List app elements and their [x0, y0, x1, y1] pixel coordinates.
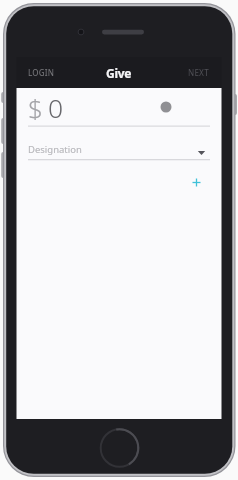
staticText: LOGIN	[28, 67, 55, 78]
button[interactable]: LOGIN	[20, 59, 62, 85]
staticText: 0	[48, 90, 64, 122]
staticText: $	[28, 90, 43, 122]
staticText: Designation	[28, 143, 82, 156]
staticText: NEXT	[188, 67, 209, 78]
button[interactable]: Designation	[28, 140, 210, 159]
button[interactable]: $	[28, 90, 148, 122]
button[interactable]	[188, 174, 205, 191]
staticText: Give	[106, 65, 132, 81]
button[interactable]: NEXT	[178, 59, 218, 85]
